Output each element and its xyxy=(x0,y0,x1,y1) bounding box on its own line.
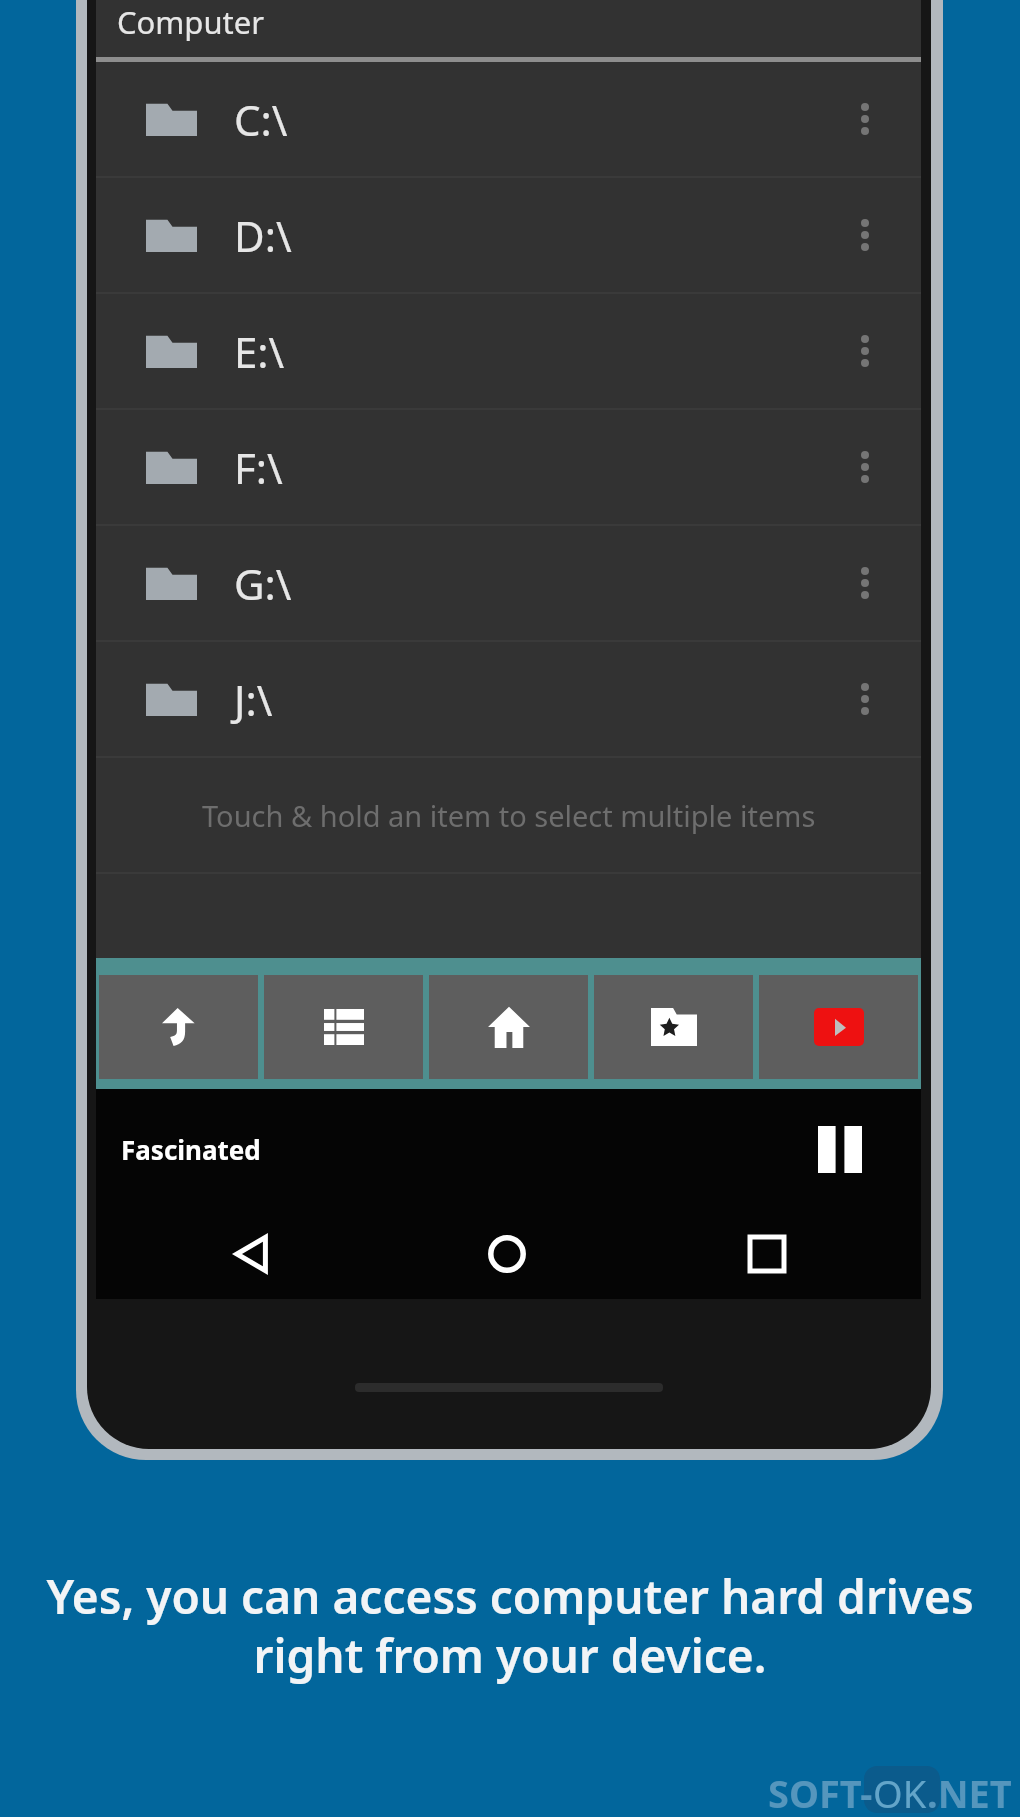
button[interactable]: More options xyxy=(833,667,897,731)
button[interactable]: Home xyxy=(429,975,588,1079)
button[interactable]: Back xyxy=(211,1214,291,1294)
button[interactable]: More options xyxy=(833,435,897,499)
staticText: OK xyxy=(873,1767,927,1817)
button[interactable]: List view xyxy=(264,975,423,1079)
button[interactable]: J:\ xyxy=(96,642,921,756)
staticText: E:\ xyxy=(234,323,285,380)
staticText: Yes, you can access computer hard drives… xyxy=(46,1565,974,1687)
button[interactable]: Favorites xyxy=(594,975,753,1079)
staticText: J:\ xyxy=(234,671,273,728)
button[interactable]: E:\ xyxy=(96,294,921,408)
button[interactable]: Home xyxy=(467,1214,547,1294)
button[interactable]: C:\ xyxy=(96,62,921,176)
staticText: C:\ xyxy=(234,91,288,148)
staticText: Fascinated xyxy=(121,1132,261,1167)
button[interactable]: Pause xyxy=(808,1117,872,1181)
staticText: D:\ xyxy=(234,207,292,264)
button[interactable]: More options xyxy=(833,203,897,267)
button[interactable]: More options xyxy=(833,551,897,615)
staticText: Touch & hold an item to select multiple … xyxy=(202,796,816,835)
staticText: F:\ xyxy=(234,439,283,496)
staticText: .NET xyxy=(927,1767,1012,1817)
button[interactable]: F:\ xyxy=(96,410,921,524)
button[interactable]: More options xyxy=(833,319,897,383)
staticText: SOFT- xyxy=(768,1767,873,1817)
button[interactable]: G:\ xyxy=(96,526,921,640)
staticText: Computer xyxy=(117,1,265,43)
button[interactable]: More options xyxy=(833,87,897,151)
button[interactable]: Video player xyxy=(759,975,918,1079)
button[interactable]: Up one level xyxy=(99,975,258,1079)
button[interactable]: D:\ xyxy=(96,178,921,292)
staticText: G:\ xyxy=(234,555,292,612)
button[interactable]: Recent apps xyxy=(727,1214,807,1294)
